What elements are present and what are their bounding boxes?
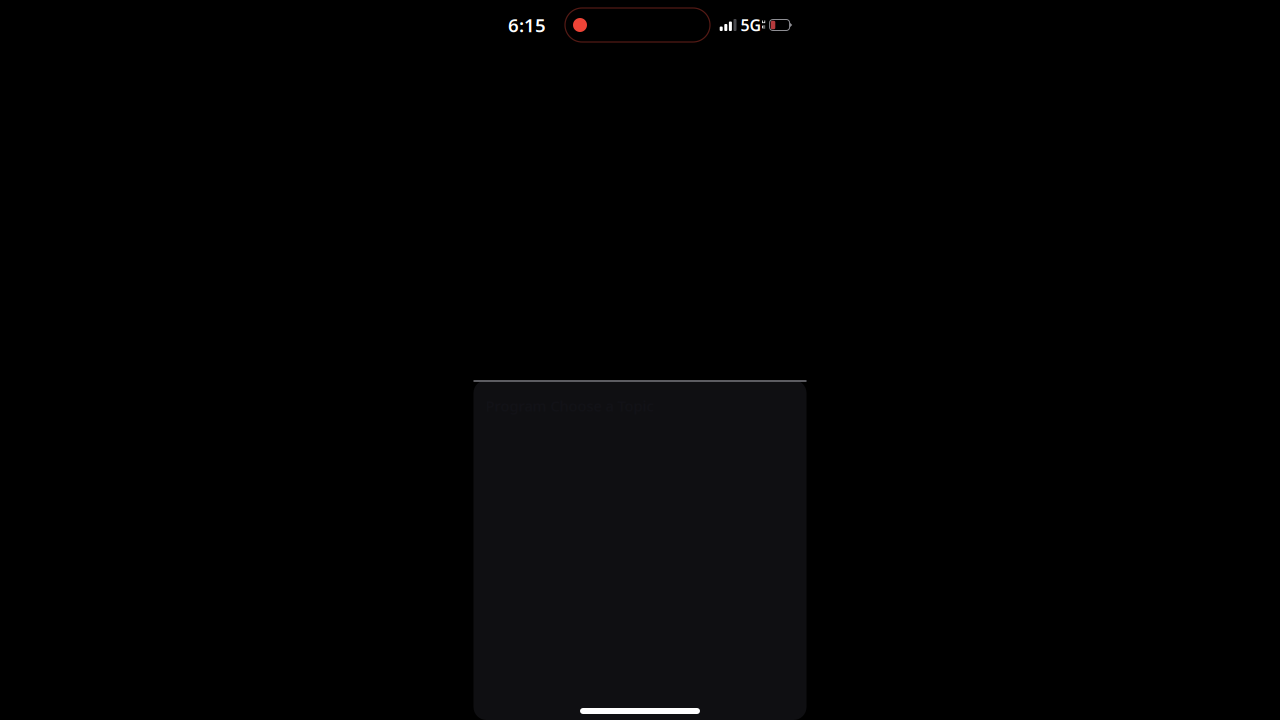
button[interactable]: Program Choose a Topic — [473, 380, 806, 415]
staticText: 6:15 — [508, 13, 546, 37]
staticText: 5G — [741, 14, 762, 36]
button[interactable]: Recording in progress — [565, 8, 715, 42]
